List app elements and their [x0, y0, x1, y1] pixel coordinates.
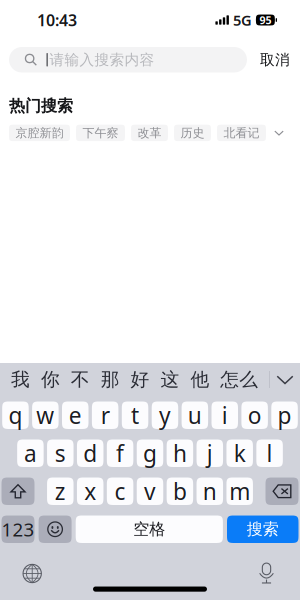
staticText: e [69, 400, 82, 430]
staticText: r [101, 400, 110, 430]
staticText: 改革 [137, 125, 161, 140]
button[interactable]: 好 [131, 364, 150, 394]
button[interactable]: 你 [41, 364, 60, 394]
button[interactable]: b [167, 477, 193, 505]
staticText: t [131, 400, 139, 430]
staticText: c [115, 476, 126, 506]
button[interactable]: i [211, 401, 238, 429]
staticText: l [267, 438, 273, 468]
staticText: q [8, 400, 22, 430]
button[interactable]: k [226, 439, 253, 467]
staticText: 5G [233, 10, 252, 30]
button[interactable]: o [241, 401, 268, 429]
staticText: 好 [131, 368, 150, 391]
staticText: h [173, 438, 187, 468]
button[interactable]: c [107, 477, 133, 505]
button[interactable]: p [271, 401, 298, 429]
button[interactable]: d [77, 439, 103, 467]
button[interactable]: t [122, 401, 148, 429]
button[interactable]: n [197, 477, 223, 505]
staticText: d [83, 438, 97, 468]
button[interactable]: y [152, 401, 178, 429]
button[interactable]: 切换输入法 [18, 559, 46, 587]
button[interactable]: a [17, 439, 44, 467]
staticText: j [207, 438, 213, 468]
button[interactable]: 京腔新韵 [9, 125, 70, 141]
button[interactable]: 我 [11, 364, 30, 394]
staticText: 空格 [133, 519, 165, 539]
button[interactable]: w [32, 401, 59, 429]
button[interactable]: 改革 [131, 125, 168, 141]
button[interactable]: r [92, 401, 118, 429]
staticText: 他 [190, 368, 209, 391]
staticText: 下午察 [82, 125, 118, 140]
button[interactable]: g [137, 439, 163, 467]
staticText: k [234, 438, 246, 468]
button[interactable]: 他 [190, 364, 209, 394]
button[interactable]: v [137, 477, 163, 505]
staticText: 取消 [260, 51, 290, 69]
staticText: s [55, 438, 66, 468]
button[interactable]: e [62, 401, 88, 429]
button[interactable]: z [47, 477, 74, 505]
button[interactable]: 历史 [174, 125, 211, 141]
staticText: p [278, 400, 292, 430]
staticText: 北看记 [223, 125, 259, 140]
staticText: 你 [41, 368, 60, 391]
staticText: g [143, 438, 157, 468]
button[interactable]: l [256, 439, 283, 467]
button[interactable]: 搜索 [227, 515, 298, 543]
staticText: 怎么 [220, 368, 258, 391]
button[interactable]: 这 [160, 364, 179, 394]
staticText: b [173, 476, 187, 506]
staticText: x [84, 476, 96, 506]
button[interactable]: 北看记 [217, 125, 266, 141]
staticText: m [229, 476, 250, 506]
staticText: i [222, 400, 228, 430]
button[interactable]: 不 [71, 364, 90, 394]
staticText: 123 [1, 517, 34, 542]
staticText: v [144, 476, 156, 506]
staticText: 这 [160, 368, 179, 391]
button[interactable]: j [197, 439, 223, 467]
button[interactable]: 下午察 [76, 125, 125, 141]
button[interactable]: h [167, 439, 193, 467]
staticText: 10:43 [37, 9, 77, 31]
staticText: f [116, 438, 124, 468]
staticText: 京腔新韵 [15, 125, 63, 140]
staticText: 请输入搜索内容 [49, 51, 154, 69]
button[interactable]: 语音输入 [252, 559, 280, 587]
staticText: z [55, 476, 66, 506]
staticText: 热门搜索 [9, 96, 73, 116]
staticText: a [24, 438, 37, 468]
button[interactable]: 数字键盘 [1, 515, 34, 543]
staticText: 95 [259, 13, 271, 27]
button[interactable]: x [77, 477, 103, 505]
staticText: 历史 [180, 125, 204, 140]
staticText: 搜索 [247, 519, 279, 539]
staticText: 不 [71, 368, 90, 391]
staticText: y [159, 400, 171, 430]
button[interactable]: 怎么 [220, 364, 258, 394]
button[interactable]: Shift [1, 477, 34, 505]
button[interactable]: 取消 [260, 47, 290, 72]
button[interactable]: 收起键盘 [270, 364, 300, 394]
staticText: w [36, 400, 54, 430]
button[interactable]: f [107, 439, 133, 467]
button[interactable]: 空格 [76, 515, 223, 543]
button[interactable]: Delete [265, 477, 298, 505]
button[interactable]: q [2, 401, 29, 429]
staticText: o [248, 400, 262, 430]
staticText: n [203, 476, 217, 506]
button[interactable]: u [182, 401, 208, 429]
button[interactable]: 展开更多热门搜索 [272, 125, 286, 141]
staticText: u [188, 400, 202, 430]
button[interactable]: m [226, 477, 253, 505]
staticText: 那 [101, 368, 120, 391]
button[interactable]: 那 [101, 364, 120, 394]
staticText: 我 [11, 368, 30, 391]
button[interactable]: 表情 [39, 515, 72, 543]
button[interactable]: s [47, 439, 74, 467]
